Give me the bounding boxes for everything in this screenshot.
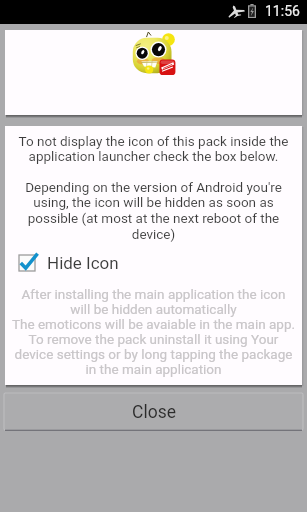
other: Hide Icon checkbox bbox=[19, 252, 42, 274]
staticText: To not display the icon of this pack ins… bbox=[11, 133, 296, 165]
staticText: 11:56 bbox=[265, 3, 300, 19]
button[interactable]: Close bbox=[4, 392, 303, 432]
staticText: Close bbox=[132, 402, 176, 423]
other: Airplane mode bbox=[227, 5, 244, 17]
staticText: Hide Icon bbox=[47, 253, 119, 273]
staticText: After installing the main application th… bbox=[11, 286, 296, 377]
staticText: Depending on the version of Android you'… bbox=[11, 179, 296, 243]
button[interactable]: Hide Icon checkbox bbox=[5, 250, 302, 276]
other: Battery charging bbox=[248, 4, 256, 18]
